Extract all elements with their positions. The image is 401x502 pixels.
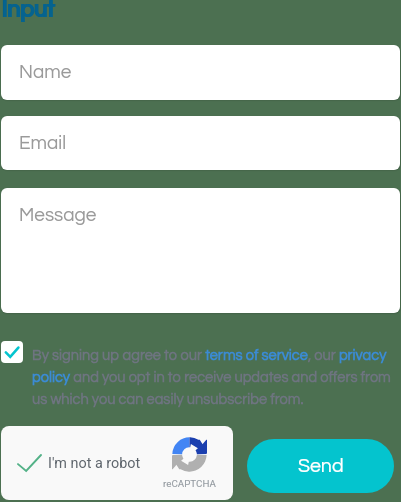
button[interactable]: Email [1, 116, 400, 170]
staticText: Name [19, 62, 72, 82]
button[interactable]: Send [247, 439, 394, 493]
staticText: Input [2, 0, 55, 22]
button[interactable]: I'm not a robot [1, 426, 233, 500]
button[interactable]: Agree to terms [1, 341, 23, 363]
staticText: Input [1, 0, 54, 22]
staticText: I'm not a robot [48, 455, 141, 472]
staticText: Message [19, 205, 97, 225]
staticText: Send [298, 456, 344, 476]
staticText: Input [2, 0, 55, 22]
staticText: By signing up agree to our terms of serv… [32, 348, 401, 407]
staticText: reCAPTCHA [163, 478, 216, 489]
button[interactable]: Message [1, 188, 400, 313]
staticText: Email [19, 133, 67, 153]
button[interactable]: Name [1, 45, 400, 100]
